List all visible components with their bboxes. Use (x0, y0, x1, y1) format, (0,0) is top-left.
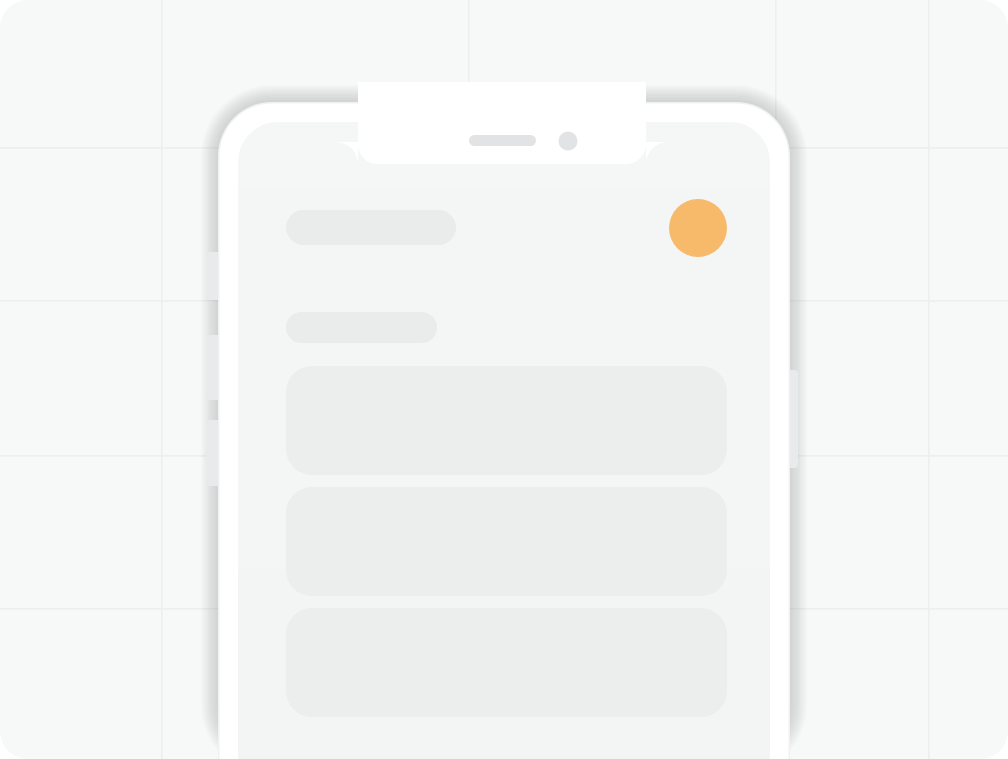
button[interactable]: Profile (669, 199, 727, 257)
